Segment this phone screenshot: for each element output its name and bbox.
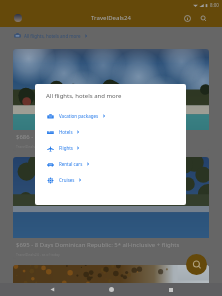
button[interactable]: Account: [14, 14, 22, 22]
staticText: $686 - 10 Days Punta Cana: 5* all-inclus…: [16, 133, 160, 141]
staticText: All flights, hotels and more: [46, 92, 122, 100]
staticText: TravelDeals24 - as of today: [16, 144, 60, 149]
button[interactable]: $499 - 7 Nights New England fall foliage…: [13, 265, 209, 296]
button[interactable]: Search: [186, 254, 207, 275]
button[interactable]: Home: [103, 283, 119, 296]
button[interactable]: $695 - 8 Days Dominican Republic: 5* all…: [13, 157, 209, 259]
staticText: Cruises: [59, 177, 75, 183]
staticText: Vacation packages: [59, 113, 99, 119]
staticText: $695 - 8 Days Dominican Republic: 5* all…: [16, 241, 180, 249]
staticText: Flights: [59, 145, 73, 151]
button[interactable]: Info: [181, 12, 194, 25]
button[interactable]: Recent apps: [163, 283, 179, 296]
button[interactable]: $686 - 10 Days Punta Cana: 5* all-inclus…: [13, 49, 209, 151]
button[interactable]: Rental cars: [35, 156, 186, 172]
button[interactable]: All flights, hotels and more: [0, 27, 222, 44]
staticText: TravelDeals24: [91, 14, 131, 22]
staticText: 8:00: [210, 2, 219, 8]
staticText: Rental cars: [59, 161, 83, 167]
staticText: All flights, hotels and more: [24, 33, 81, 39]
button[interactable]: Back: [44, 283, 60, 296]
staticText: Hotels: [59, 129, 73, 135]
button[interactable]: Vacation packages: [35, 108, 186, 124]
button[interactable]: Search: [197, 12, 210, 25]
button[interactable]: Cruises: [35, 172, 186, 188]
staticText: TravelDeals24 - as of today: [16, 252, 60, 257]
button[interactable]: Flights: [35, 140, 186, 156]
button[interactable]: Hotels: [35, 124, 186, 140]
